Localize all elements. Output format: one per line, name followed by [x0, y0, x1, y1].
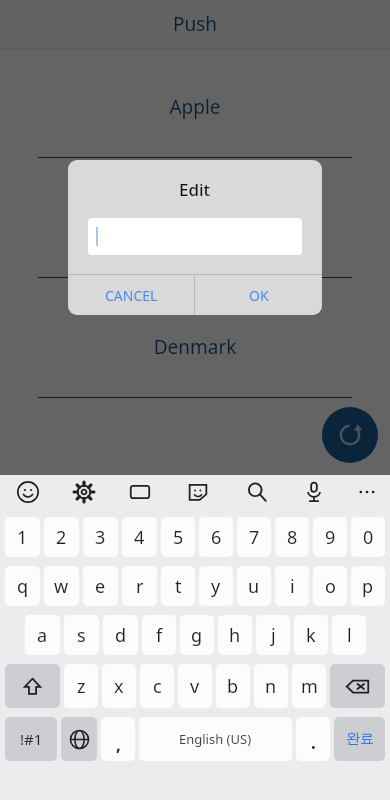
button[interactable]: 1 — [5, 517, 40, 557]
staticText: l — [347, 623, 352, 648]
staticText: Push — [173, 11, 218, 37]
button[interactable]: i — [275, 566, 309, 606]
staticText: r — [136, 574, 144, 599]
button[interactable]: Undo — [322, 407, 378, 463]
button[interactable]: b — [216, 664, 250, 708]
button[interactable]: 5 — [161, 517, 195, 557]
staticText: 8 — [287, 525, 298, 550]
button[interactable]: x — [102, 664, 136, 708]
button[interactable]: z — [64, 664, 98, 708]
button[interactable]: e — [83, 566, 118, 606]
staticText: m — [301, 674, 318, 699]
staticText: j — [271, 623, 276, 648]
button[interactable]: j — [256, 615, 290, 655]
button[interactable]: m — [292, 664, 326, 708]
staticText: English (US) — [179, 730, 252, 748]
staticText: h — [229, 623, 241, 648]
staticText: 5 — [173, 525, 184, 550]
staticText: k — [306, 623, 316, 648]
button[interactable]: 0 — [351, 517, 385, 557]
staticText: s — [77, 623, 86, 648]
button[interactable]: CANCEL — [68, 275, 194, 315]
button[interactable]: Denmark — [0, 334, 390, 360]
button[interactable]: g — [180, 615, 214, 655]
button[interactable]: p — [351, 566, 385, 606]
button[interactable]: l — [332, 615, 366, 655]
button[interactable]: y — [199, 566, 233, 606]
staticText: i — [290, 574, 295, 599]
staticText: 7 — [249, 525, 260, 550]
staticText: d — [115, 623, 127, 648]
button[interactable]: v — [178, 664, 212, 708]
button[interactable]: f — [142, 615, 176, 655]
staticText: f — [156, 623, 163, 648]
button[interactable]: , — [101, 717, 135, 761]
button[interactable]: Coffee — [0, 214, 390, 240]
staticText: o — [325, 574, 336, 599]
button[interactable]: c — [140, 664, 174, 708]
button[interactable]: GIF — [123, 475, 157, 509]
button[interactable]: Voice input — [297, 475, 331, 509]
button[interactable]: 9 — [313, 517, 347, 557]
staticText: 완료 — [346, 730, 374, 748]
staticText: . — [311, 731, 316, 754]
button[interactable]: Search — [240, 475, 274, 509]
staticText: OK — [249, 286, 269, 305]
staticText: v — [190, 674, 200, 699]
button[interactable]: Change keyboard — [61, 717, 97, 761]
button[interactable]: OK — [195, 275, 322, 315]
staticText: 9 — [325, 525, 336, 550]
button[interactable]: Stickers — [181, 475, 215, 509]
button[interactable]: q — [5, 566, 40, 606]
button[interactable]: English (US) — [139, 717, 292, 761]
staticText: c — [153, 674, 162, 699]
button[interactable]: h — [218, 615, 252, 655]
button[interactable]: w — [44, 566, 79, 606]
staticText: p — [362, 574, 374, 599]
staticText: e — [95, 574, 106, 599]
staticText: z — [77, 674, 86, 699]
button[interactable]: 6 — [199, 517, 233, 557]
button[interactable]: k — [294, 615, 328, 655]
staticText: y — [211, 574, 221, 599]
button[interactable]: 8 — [275, 517, 309, 557]
button[interactable]: 7 — [237, 517, 271, 557]
staticText: 0 — [363, 525, 374, 550]
staticText: g — [191, 623, 203, 648]
button[interactable]: Text field — [88, 218, 302, 255]
staticText: q — [17, 574, 29, 599]
button[interactable]: s — [64, 615, 99, 655]
button[interactable]: Backspace — [330, 664, 385, 708]
button[interactable]: 3 — [83, 517, 118, 557]
staticText: 1 — [17, 525, 28, 550]
button[interactable]: 완료 — [334, 717, 385, 761]
button[interactable]: r — [122, 566, 157, 606]
button[interactable]: u — [237, 566, 271, 606]
button[interactable]: 2 — [44, 517, 79, 557]
button[interactable]: n — [254, 664, 288, 708]
staticText: 4 — [134, 525, 145, 550]
staticText: w — [54, 574, 69, 599]
button[interactable]: d — [103, 615, 138, 655]
button[interactable]: 4 — [122, 517, 157, 557]
button[interactable]: Shift — [5, 664, 60, 708]
staticText: a — [37, 623, 48, 648]
button[interactable]: !#1 — [5, 717, 57, 761]
button[interactable]: Push — [0, 0, 390, 48]
staticText: 6 — [211, 525, 222, 550]
staticText: 2 — [56, 525, 67, 550]
staticText: n — [265, 674, 277, 699]
button[interactable]: . — [296, 717, 330, 761]
staticText: 3 — [95, 525, 106, 550]
button[interactable]: Emoji — [11, 475, 45, 509]
staticText: Edit — [179, 178, 211, 201]
button[interactable]: t — [161, 566, 195, 606]
button[interactable]: Apple — [0, 94, 390, 120]
button[interactable]: a — [25, 615, 60, 655]
button[interactable]: Settings — [67, 475, 101, 509]
button[interactable]: More options — [350, 475, 384, 509]
staticText: x — [114, 674, 124, 699]
button[interactable]: o — [313, 566, 347, 606]
staticText: !#1 — [20, 729, 43, 749]
staticText: , — [116, 733, 121, 756]
